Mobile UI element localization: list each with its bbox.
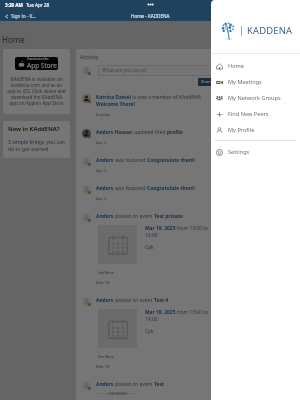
staticText: is now a member of KAddENA bbox=[131, 94, 201, 101]
staticText: Find New Peers bbox=[228, 110, 269, 118]
button[interactable]: New in KAddENA? bbox=[3, 121, 70, 158]
staticText: was featured bbox=[114, 157, 147, 164]
staticText: Cpk bbox=[145, 328, 154, 335]
staticText: posted on event bbox=[114, 297, 154, 304]
button[interactable]: Find New Peers bbox=[211, 106, 300, 122]
button[interactable]: Download on the App Store bbox=[15, 57, 58, 70]
staticText: Test 4 bbox=[154, 297, 169, 304]
button[interactable]: Anders Hassan bbox=[76, 124, 300, 152]
staticText: posted on event bbox=[114, 381, 154, 388]
staticText: Anders Hassan bbox=[96, 129, 133, 136]
staticText: Mar 18, 2025 bbox=[145, 225, 177, 232]
staticText: My Meetings bbox=[228, 78, 262, 86]
button[interactable]: Share bbox=[198, 78, 216, 86]
staticText: 19:00 bbox=[145, 316, 158, 323]
staticText: Congratulate them! bbox=[147, 157, 195, 164]
staticText: KADDENA bbox=[247, 24, 293, 37]
staticText: do to get started bbox=[8, 146, 49, 153]
button[interactable]: Anders bbox=[76, 292, 300, 376]
staticText: Anders bbox=[96, 297, 114, 304]
button[interactable]: What are you up to? bbox=[98, 65, 218, 76]
staticText: Activity bbox=[80, 53, 99, 60]
staticText: Apr 3 bbox=[96, 168, 107, 174]
staticText: Share bbox=[201, 79, 213, 85]
button[interactable]: KADDENA bbox=[220, 21, 293, 40]
button[interactable]: My Profile bbox=[211, 122, 300, 138]
button[interactable]: Katrina Daniel bbox=[76, 89, 300, 124]
staticText: My Profile bbox=[228, 126, 255, 134]
staticText: Home - KADDENA bbox=[131, 13, 170, 19]
staticText: was featured bbox=[114, 185, 147, 192]
staticText: Katrina Daniel bbox=[96, 94, 131, 101]
staticText: Cpk bbox=[145, 244, 154, 251]
staticText: from 13:00 to bbox=[177, 309, 208, 316]
staticText: Mar 18 bbox=[96, 364, 110, 370]
staticText: App Store bbox=[27, 61, 57, 70]
staticText: Anders bbox=[96, 213, 114, 220]
staticText: Apr 3 bbox=[96, 196, 107, 202]
staticText: 3:20 AM bbox=[5, 2, 23, 8]
staticText: Download on the bbox=[27, 57, 49, 61]
button[interactable]: Settings bbox=[211, 144, 300, 160]
staticText: updated their bbox=[133, 129, 167, 136]
staticText: Congratulate them! bbox=[147, 185, 195, 192]
button[interactable]: My Meetings bbox=[211, 74, 300, 90]
staticText: See More bbox=[98, 354, 114, 359]
staticText: from 13:00 to bbox=[177, 225, 208, 232]
staticText: Test private bbox=[154, 213, 183, 220]
staticText: Home bbox=[2, 34, 25, 45]
staticText: KAddENA is available on kaddena.com and … bbox=[7, 76, 66, 106]
button[interactable]: Anders bbox=[76, 376, 300, 400]
staticText: See More bbox=[98, 270, 114, 275]
button[interactable]: Anders bbox=[76, 180, 300, 208]
staticText: Anders bbox=[96, 185, 114, 192]
staticText: Mar 18 bbox=[96, 280, 110, 286]
staticText: New in KAddENA? bbox=[8, 125, 60, 133]
staticText: Tue Apr 28 bbox=[26, 2, 50, 8]
staticText: My Network Groups bbox=[228, 94, 281, 102]
staticText: you can bbox=[45, 139, 65, 146]
staticText: Apr 3 bbox=[96, 140, 107, 146]
staticText: Home bbox=[228, 62, 244, 70]
button[interactable]: Back bbox=[4, 13, 36, 19]
staticText: Sign in - K... bbox=[11, 13, 36, 19]
staticText: 3 simple things bbox=[8, 139, 45, 146]
button[interactable]: Anders bbox=[76, 208, 300, 292]
staticText: Anders bbox=[96, 157, 114, 164]
button[interactable]: Anders bbox=[76, 152, 300, 180]
staticText: Test bbox=[154, 381, 164, 388]
staticText: profile bbox=[167, 129, 183, 136]
staticText: Sunday bbox=[96, 112, 111, 118]
button[interactable]: My Network Groups bbox=[211, 90, 300, 106]
button[interactable]: Home bbox=[211, 58, 300, 74]
staticText: Settings bbox=[228, 148, 250, 156]
button[interactable]: Download on the App Store bbox=[3, 49, 70, 114]
staticText: Anders bbox=[96, 381, 114, 388]
staticText: posted on event bbox=[114, 213, 154, 220]
staticText: Welcome There! bbox=[96, 101, 135, 108]
staticText: Mar 18, 2025 bbox=[145, 309, 177, 316]
staticText: 19:00 bbox=[145, 232, 158, 239]
staticText: What are you up to? bbox=[102, 67, 148, 74]
